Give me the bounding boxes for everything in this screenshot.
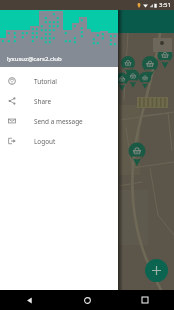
button[interactable]: Recents [135,290,155,310]
button[interactable]: Add [145,259,168,282]
button[interactable]: Share [0,91,118,111]
staticText: 3:51 [159,1,171,9]
button[interactable]: Logout [0,131,118,151]
staticText: lyxusuz@cars2.club [7,55,62,63]
staticText: Share [34,97,52,106]
staticText: Send a message [34,117,83,126]
button[interactable]: Back [19,290,39,310]
button[interactable]: Home [77,290,97,310]
button[interactable]: Send a message [0,111,118,131]
button[interactable]: Tutorial [0,71,118,91]
staticText: Logout [34,137,56,146]
staticText: Tutorial [34,77,57,86]
